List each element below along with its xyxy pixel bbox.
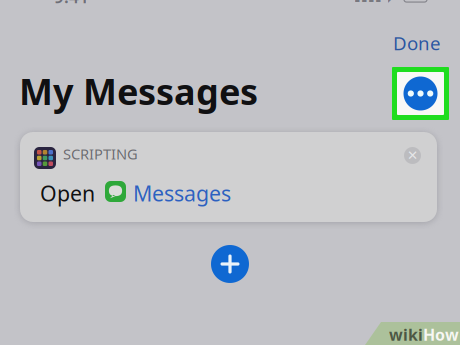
staticText: Open <box>40 179 95 207</box>
staticText: My Messages <box>19 67 258 115</box>
button[interactable]: More options <box>403 76 437 110</box>
staticText: 9:41 <box>54 0 89 8</box>
staticText: Done <box>393 31 441 55</box>
button[interactable]: Add action <box>211 245 249 283</box>
button[interactable]: Done <box>383 24 451 62</box>
staticText: ▮▮▮▮ <box>354 0 382 3</box>
staticText: SCRIPTING <box>63 144 138 163</box>
staticText: wiki <box>389 324 423 345</box>
button[interactable]: Remove action <box>404 147 421 164</box>
staticText: ◤ <box>388 0 398 4</box>
staticText: ✕ <box>407 148 418 163</box>
staticText: Messages <box>133 179 231 207</box>
staticText: How <box>423 324 459 345</box>
